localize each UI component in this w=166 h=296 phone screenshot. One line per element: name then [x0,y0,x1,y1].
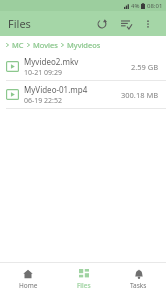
button[interactable]: Movies [31,40,60,50]
staticText: 10-21 09:29 [24,68,62,78]
staticText: 06-19 22:52 [24,96,62,106]
button[interactable]: MC [10,40,26,50]
staticText: Files [8,16,31,31]
staticText: 08:01 [147,2,163,10]
staticText: Home [19,281,38,290]
button[interactable]: Refresh [92,14,112,34]
button[interactable]: Tasks [111,262,166,296]
staticText: Tasks [130,281,147,290]
staticText: Myvideos [67,40,101,50]
staticText: MC [12,40,24,50]
staticText: MyVideo-01.mp4 [24,84,88,95]
staticText: Myvideo2.mkv [24,56,79,67]
staticText: 4% [131,2,140,10]
button[interactable]: Myvideos [65,40,103,50]
button[interactable]: Sort [116,14,136,34]
staticText: Files [77,281,91,290]
staticText: 300.18 MB [121,90,159,100]
button[interactable]: Files [56,262,111,296]
staticText: Movies [33,40,58,50]
button[interactable]: Home [0,262,56,296]
button[interactable]: Myvideo2.mkv [0,53,166,80]
button[interactable]: More options [138,14,158,34]
staticText: 2.59 GB [131,62,159,72]
button[interactable]: MyVideo-01.mp4 [0,81,166,108]
